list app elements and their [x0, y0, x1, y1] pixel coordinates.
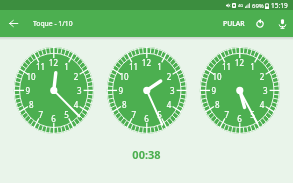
staticText: 4G — [238, 3, 244, 8]
button[interactable]: PULAR — [218, 10, 249, 37]
staticText: 15:19 — [271, 1, 288, 10]
staticText: 00:38 — [132, 147, 161, 162]
button[interactable]: Back — [1, 10, 25, 37]
button[interactable]: Sound settings — [271, 10, 293, 37]
button[interactable]: Restart — [249, 10, 271, 37]
staticText: PULAR — [223, 19, 245, 28]
staticText: 69% — [252, 2, 264, 10]
staticText: Toque - 1/10 — [33, 19, 73, 28]
